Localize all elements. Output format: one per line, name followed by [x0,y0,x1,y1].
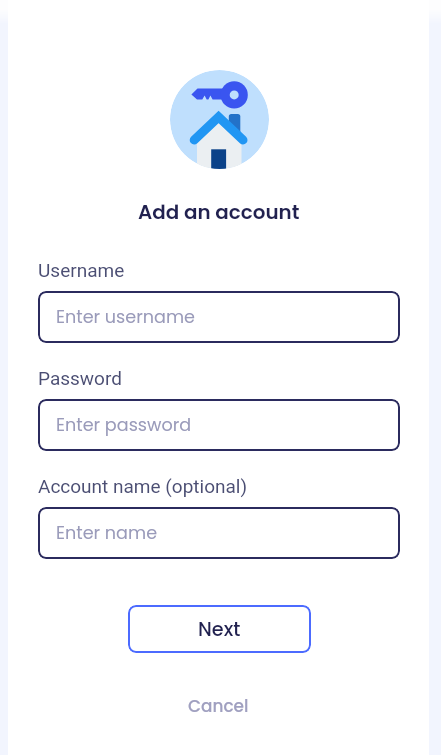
staticText: Username [38,259,125,281]
button[interactable]: Enter name [38,507,400,559]
staticText: Enter password [56,413,192,438]
button[interactable]: Enter username [38,291,400,343]
button[interactable]: Next [128,605,311,653]
staticText: Password [38,367,122,389]
staticText: Next [198,616,241,643]
staticText: Account name (optional) [38,475,248,497]
staticText: Enter name [56,521,158,546]
staticText: Add an account [138,198,300,226]
button[interactable]: Enter password [38,399,400,451]
staticText: Cancel [188,694,249,718]
button[interactable]: Cancel [176,689,261,723]
staticText: Enter username [56,305,195,330]
